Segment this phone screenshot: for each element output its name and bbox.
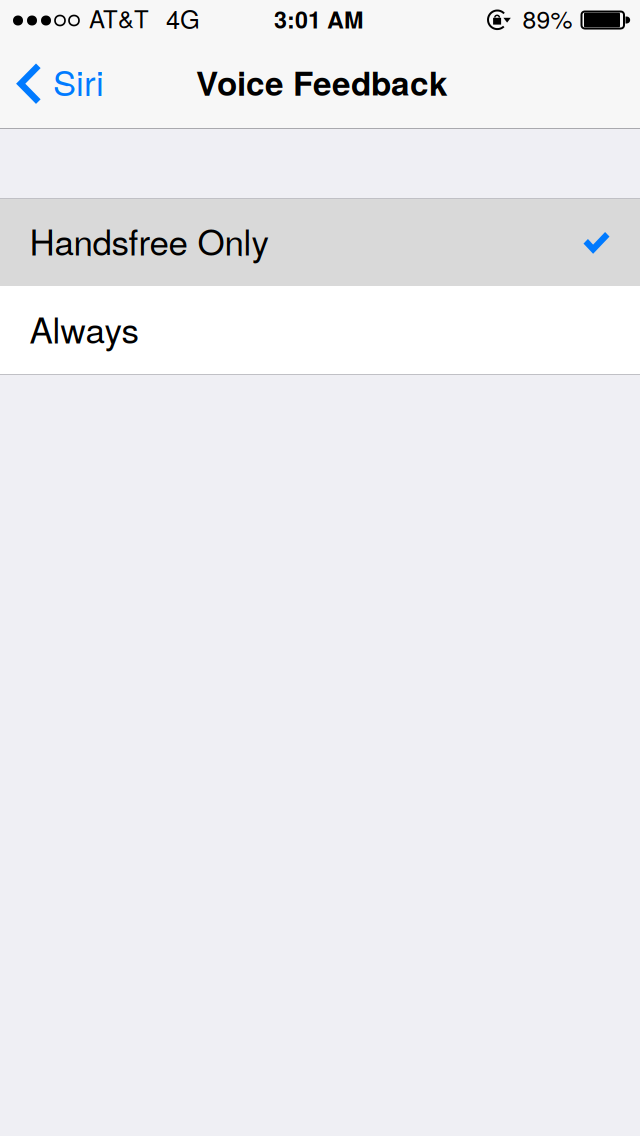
button[interactable]: Always (0, 286, 640, 374)
staticText: 4G (166, 0, 200, 36)
staticText: Always (29, 303, 138, 353)
staticText: Voice Feedback (196, 58, 448, 106)
staticText: 3:01 AM (274, 2, 363, 36)
staticText: Handsfree Only (29, 215, 268, 265)
button[interactable]: Handsfree Only (0, 198, 640, 286)
staticText: AT&T (89, 1, 149, 35)
staticText: 89% (522, 0, 572, 36)
staticText: Siri (53, 56, 104, 106)
button[interactable]: Back to Siri (0, 40, 120, 128)
